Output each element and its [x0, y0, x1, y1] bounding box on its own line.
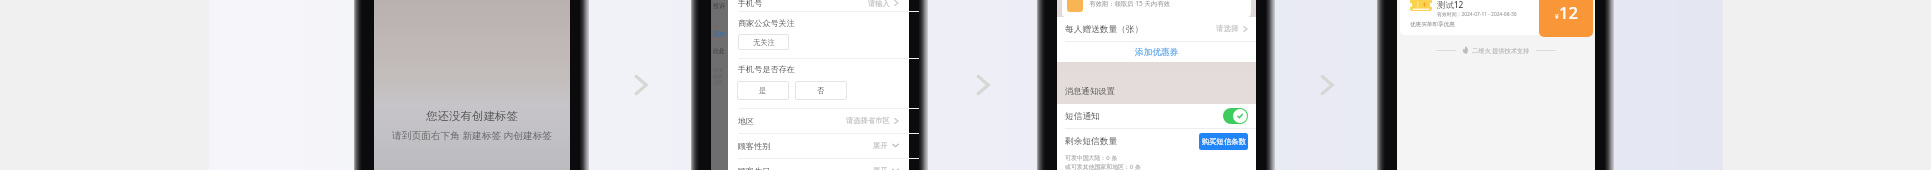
staticText: 是	[759, 86, 767, 95]
staticText: 添加	[713, 30, 725, 38]
staticText: 顾客性别	[738, 141, 771, 151]
staticText: 请选择	[1216, 24, 1239, 34]
button[interactable]: 顾客性别	[728, 133, 909, 158]
button[interactable]: 否	[795, 81, 847, 100]
staticText: ¥	[1555, 12, 1559, 21]
button[interactable]: 地区	[728, 108, 909, 133]
staticText: 优惠买单即享优惠	[1410, 21, 1455, 28]
staticText: 地区	[738, 116, 755, 126]
staticText: 商家公众号关注	[738, 18, 795, 28]
staticText: 此处	[713, 47, 725, 55]
button[interactable]: SMS notification toggle	[1223, 108, 1248, 124]
staticText: 请到页面右下角 新建标签 内创建标签	[392, 129, 553, 142]
staticText: 12	[1559, 1, 1578, 23]
staticText: 每人赠送数量（张）	[1065, 24, 1144, 35]
button[interactable]: 顾客生日	[728, 158, 909, 170]
staticText: 有效时间：2024-07-11 - 2024-08-30	[1437, 11, 1517, 18]
staticText: 展开	[873, 166, 888, 170]
staticText: 请选择省市区	[846, 116, 890, 125]
staticText: 剩余短信数量	[1065, 136, 1118, 147]
staticText: 顾客生日	[738, 166, 771, 170]
staticText: 可发中国大陆：0 条	[1065, 154, 1118, 162]
button[interactable]: 无关注	[738, 34, 789, 50]
staticText: 添加优惠券	[1135, 47, 1179, 58]
staticText: 手机号是否存在	[738, 64, 795, 74]
staticText: 二维火 提供技术支持	[1472, 46, 1530, 54]
staticText: 您还没有创建标签	[426, 109, 518, 123]
staticText: 有效期：领取后 15 天内有效	[1089, 0, 1170, 8]
staticText: 手机号	[738, 0, 763, 8]
button[interactable]: 购买短信条数	[1199, 133, 1248, 150]
button[interactable]: 添加优惠券	[1057, 42, 1256, 62]
staticText: 短信通知	[1065, 111, 1100, 122]
staticText: 否	[817, 86, 825, 95]
staticText: 无关注	[753, 38, 775, 47]
button[interactable]: 每人赠送数量（张）	[1057, 17, 1256, 41]
staticText: 投诉	[713, 2, 725, 10]
staticText: 测试12	[1437, 0, 1464, 10]
button[interactable]: 手机号	[728, 0, 909, 10]
staticText: 请输入	[868, 0, 890, 8]
staticText: 购买短信条数	[1202, 137, 1246, 146]
staticText: 或可发其他国家和地区：0 条	[1065, 163, 1141, 170]
staticText: 消息通知设置	[1065, 86, 1115, 96]
button[interactable]: 是	[737, 81, 789, 100]
staticText: 展开	[873, 141, 888, 150]
button[interactable]: 短信通知	[1057, 104, 1256, 128]
